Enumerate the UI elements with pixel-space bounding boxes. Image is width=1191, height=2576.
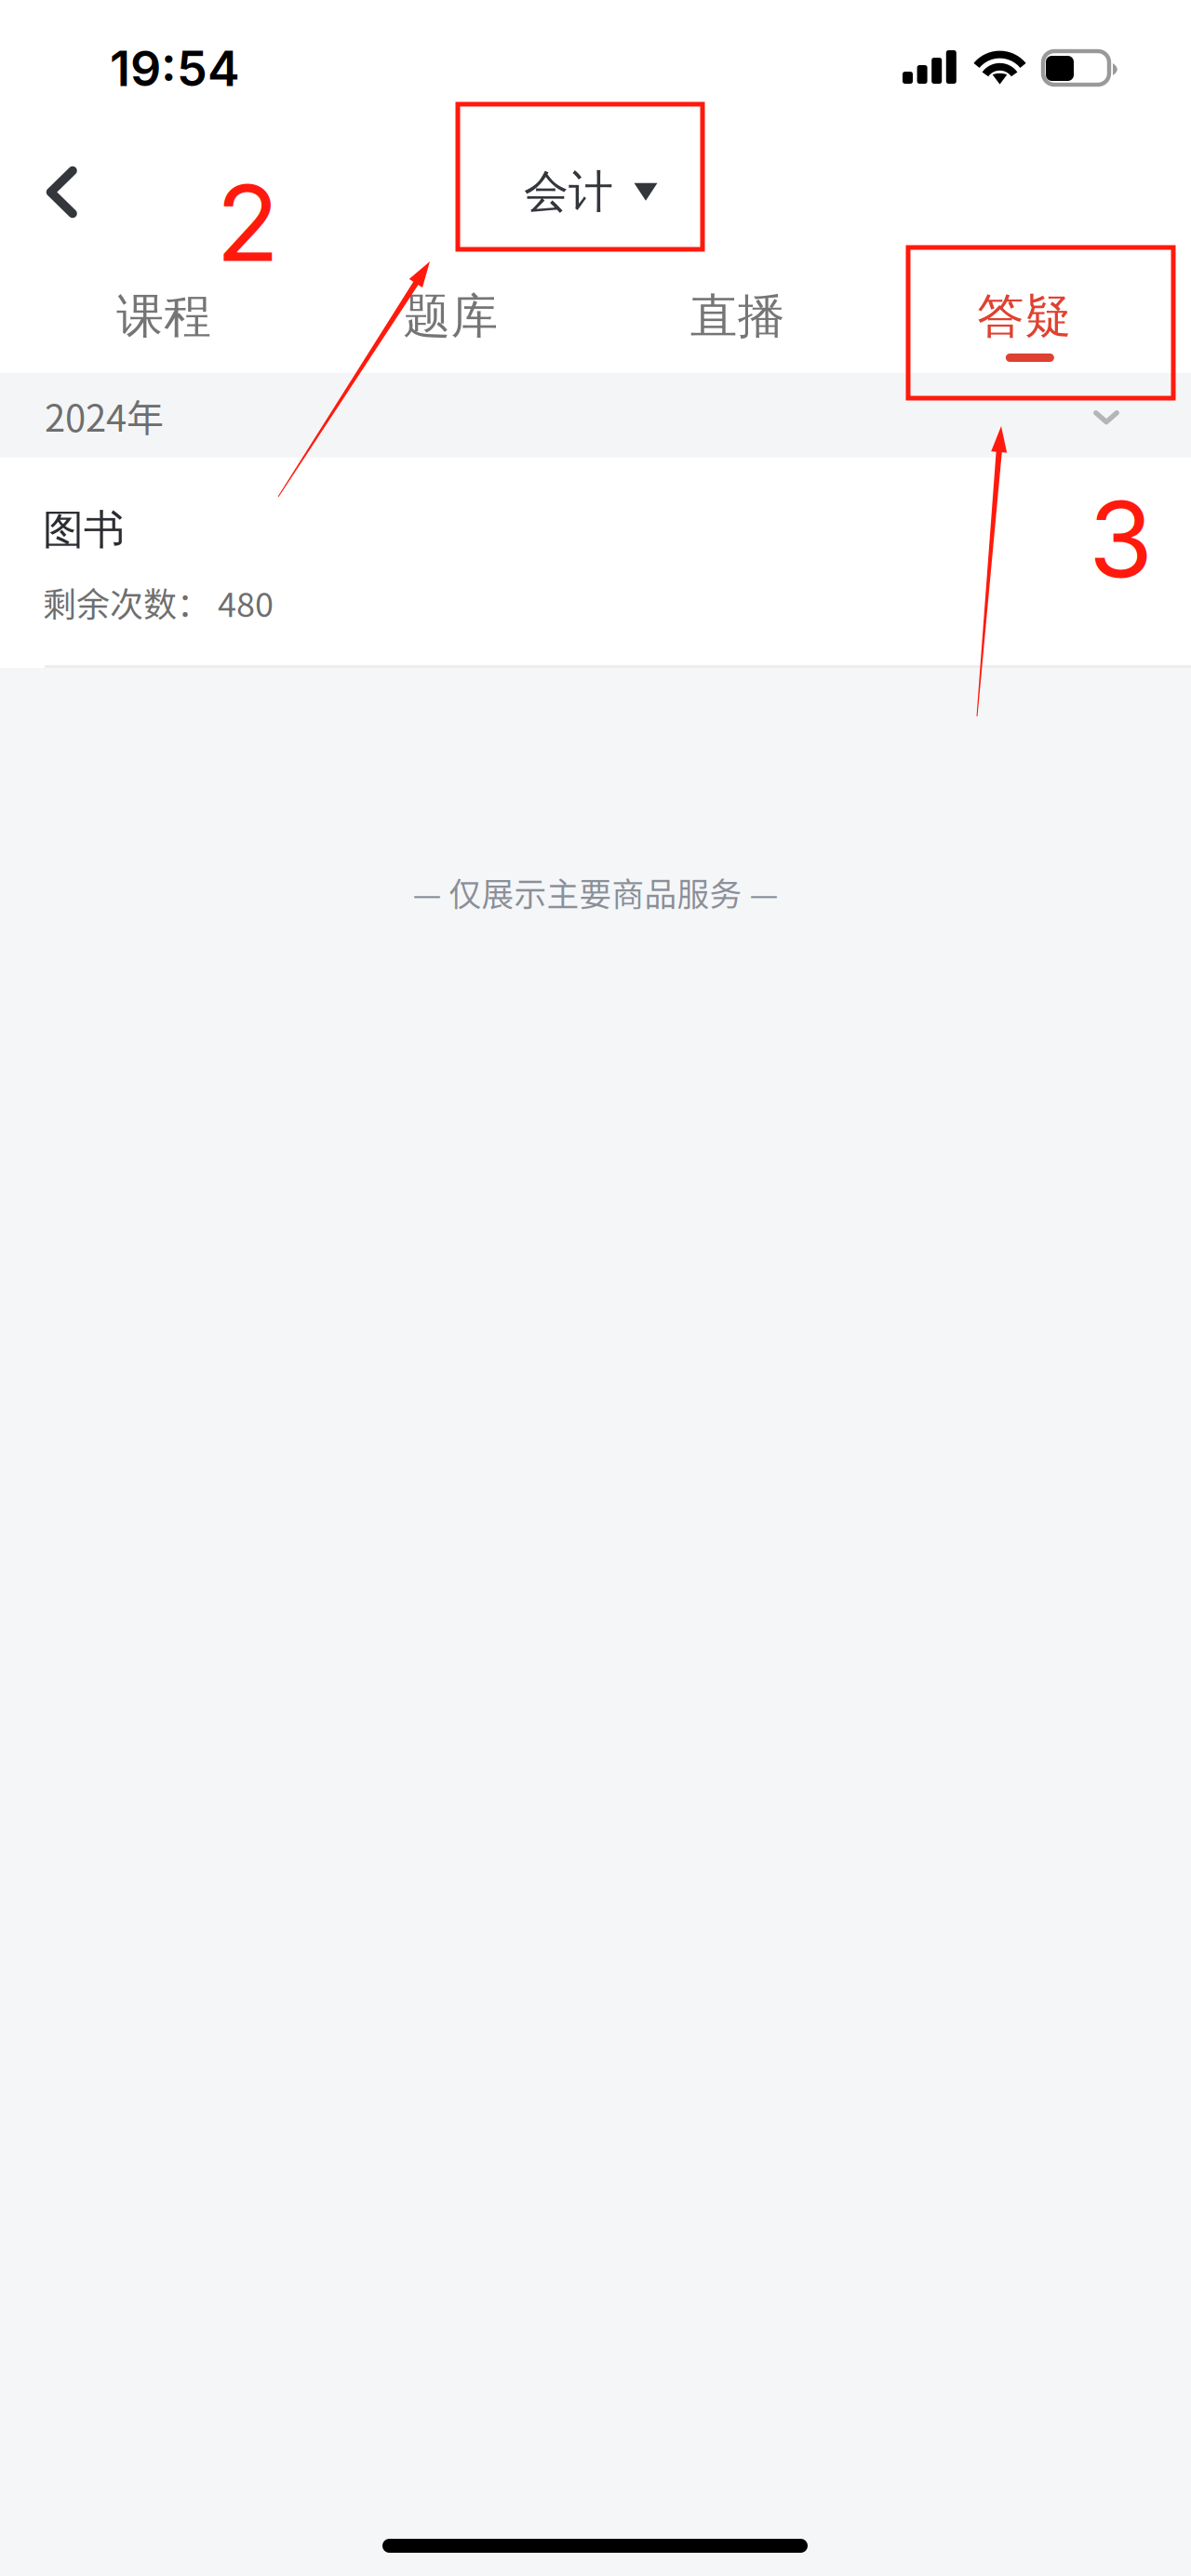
button[interactable]: 答疑: [881, 271, 1168, 382]
staticText: 2024年: [45, 388, 164, 442]
button[interactable]: 题库: [307, 271, 594, 382]
staticText: 答疑: [977, 287, 1072, 346]
button[interactable]: 会计: [498, 143, 684, 240]
staticText: 题库: [403, 287, 498, 346]
button[interactable]: 图书: [0, 458, 1191, 668]
button[interactable]: Back: [17, 137, 107, 247]
staticText: — 仅展示主要商品服务 —: [413, 869, 778, 916]
staticText: 图书: [43, 504, 125, 556]
button[interactable]: 课程: [20, 271, 307, 382]
staticText: 剩余次数： 480: [43, 578, 274, 627]
staticText: 直播: [690, 287, 785, 346]
staticText: 19:54: [110, 39, 240, 98]
staticText: 课程: [116, 287, 211, 346]
staticText: 2: [216, 160, 279, 286]
staticText: 会计: [524, 164, 613, 220]
button[interactable]: 2024年: [0, 373, 1191, 458]
button[interactable]: 直播: [594, 271, 881, 382]
staticText: 3: [1089, 476, 1153, 602]
